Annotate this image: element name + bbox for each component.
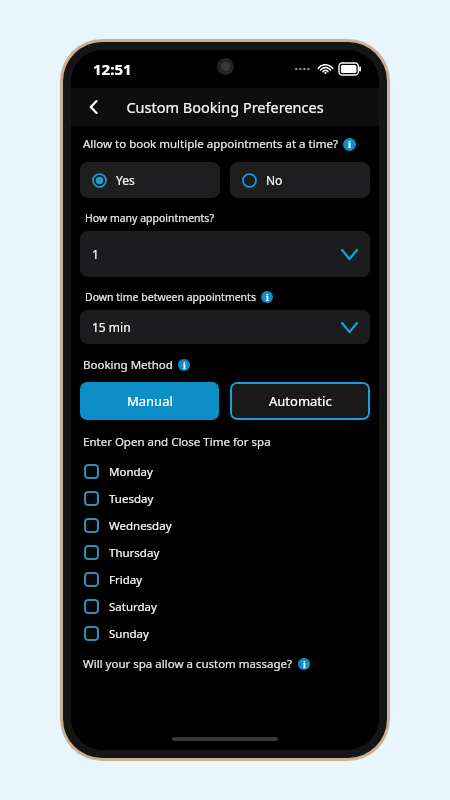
staticText: Friday	[109, 572, 143, 588]
button[interactable]: More information	[343, 138, 356, 151]
button[interactable]: Wednesday	[80, 512, 370, 539]
staticText: Down time between appointments	[85, 290, 256, 304]
button[interactable]: Sunday	[80, 620, 370, 647]
staticText: i	[348, 139, 352, 151]
staticText: Sunday	[109, 626, 149, 642]
button[interactable]: Thursday	[80, 539, 370, 566]
staticText: Tuesday	[109, 491, 154, 507]
staticText: No	[266, 172, 283, 188]
button[interactable]: More information	[261, 291, 273, 303]
staticText: Thursday	[109, 545, 160, 561]
button[interactable]: 1	[80, 231, 370, 277]
button[interactable]: More information	[178, 359, 190, 371]
staticText: i	[183, 360, 186, 371]
staticText: Wednesday	[109, 518, 172, 534]
staticText: How many appointments?	[85, 211, 214, 225]
staticText: Monday	[109, 464, 153, 480]
staticText: Allow to book multiple appointments at a…	[83, 136, 338, 152]
staticText: Enter Open and Close Time for spa	[83, 434, 271, 450]
staticText: Booking Method	[83, 357, 173, 373]
button[interactable]: No	[230, 162, 370, 198]
button[interactable]: Tuesday	[80, 485, 370, 512]
button[interactable]: Monday	[80, 458, 370, 485]
button[interactable]: Friday	[80, 566, 370, 593]
staticText: i	[303, 659, 306, 670]
staticText: 15 min	[92, 319, 131, 335]
button[interactable]: Manual	[80, 382, 219, 420]
button[interactable]: Yes	[80, 162, 220, 198]
staticText: 12:51	[93, 59, 132, 79]
staticText: i	[266, 292, 269, 303]
staticText: Automatic	[269, 392, 332, 410]
button[interactable]: Automatic	[230, 382, 370, 420]
staticText: Will your spa allow a custom massage?	[83, 656, 293, 672]
staticText: Yes	[116, 172, 135, 188]
button[interactable]: 15 min	[80, 310, 370, 344]
button[interactable]: Back	[77, 90, 111, 124]
staticText: Custom Booking Preferences	[126, 97, 324, 117]
staticText: Manual	[127, 392, 173, 410]
button[interactable]: Saturday	[80, 593, 370, 620]
button[interactable]: More information	[298, 658, 310, 670]
staticText: 1	[92, 246, 99, 262]
staticText: Saturday	[109, 599, 157, 615]
